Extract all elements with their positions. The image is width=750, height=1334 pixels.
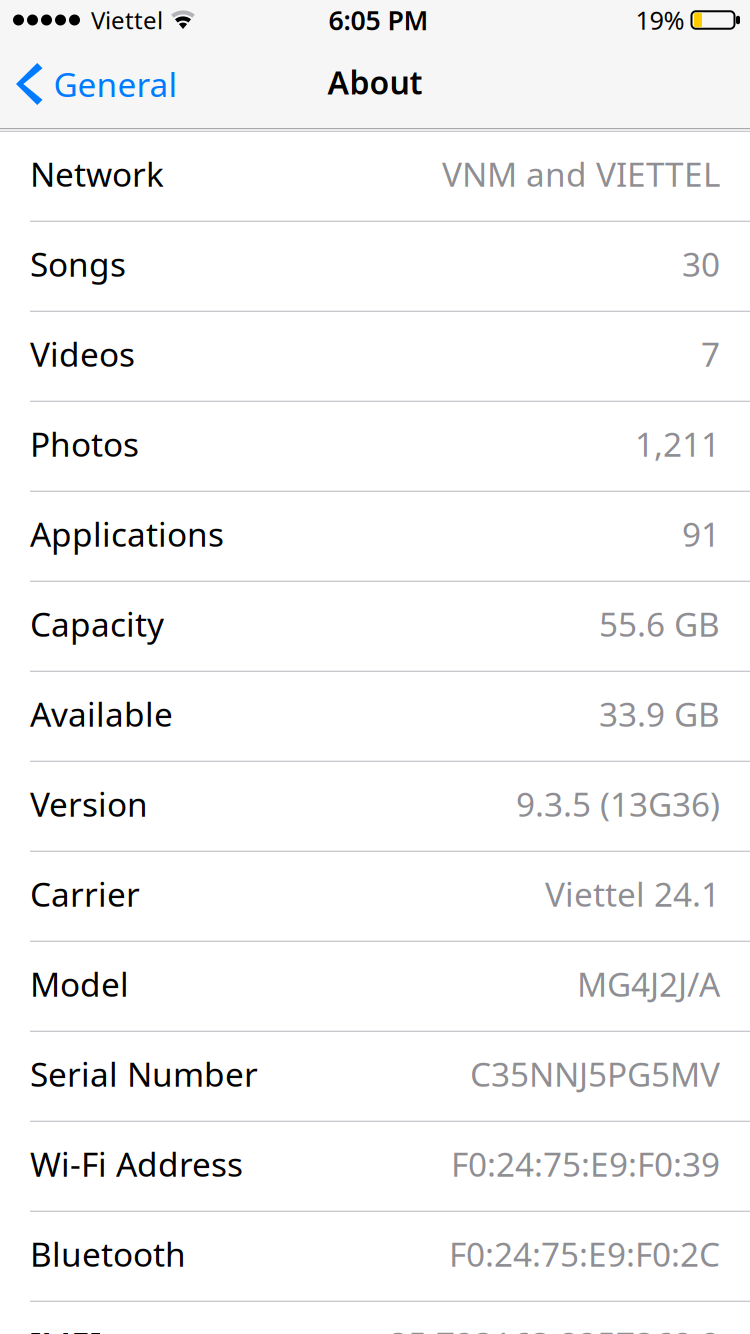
button[interactable]: IMEI [0, 1302, 750, 1334]
staticText: Carrier [30, 872, 140, 916]
button[interactable]: Applications [0, 492, 750, 582]
staticText: F0:24:75:E9:F0:2C [449, 1232, 720, 1276]
staticText: 33.9 GB [599, 692, 720, 736]
button[interactable]: Back to General [0, 40, 189, 128]
staticText: Songs [30, 242, 126, 286]
staticText: 6:05 PM [328, 2, 428, 38]
staticText: Serial Number [30, 1052, 258, 1096]
staticText: Model [30, 962, 129, 1006]
button[interactable]: Bluetooth [0, 1212, 750, 1302]
button[interactable]: Wi-Fi Address [0, 1122, 750, 1212]
button[interactable]: Carrier [0, 852, 750, 942]
button[interactable]: Model [0, 942, 750, 1032]
staticText: 1,211 [635, 422, 720, 466]
staticText: 7 [701, 332, 720, 376]
button[interactable]: Photos [0, 402, 750, 492]
staticText: IMEI [30, 1322, 101, 1334]
staticText: 55.6 GB [599, 602, 720, 646]
staticText: Bluetooth [30, 1232, 186, 1276]
staticText: 30 [682, 242, 720, 286]
staticText: Viettel [91, 4, 163, 36]
button[interactable]: Network [0, 132, 750, 222]
staticText: Available [30, 692, 173, 736]
staticText: Capacity [30, 602, 164, 646]
staticText: C35NNJ5PG5MV [470, 1052, 720, 1096]
button[interactable]: Version [0, 762, 750, 852]
staticText: Version [30, 782, 148, 826]
staticText: Network [30, 152, 164, 196]
staticText: Photos [30, 422, 139, 466]
staticText: General [53, 62, 177, 106]
staticText: 9.3.5 (13G36) [516, 782, 720, 826]
staticText: MG4J2J/A [577, 962, 720, 1006]
button[interactable]: Serial Number [0, 1032, 750, 1122]
button[interactable]: Available [0, 672, 750, 762]
staticText: Videos [30, 332, 135, 376]
staticText: Wi-Fi Address [30, 1142, 243, 1186]
staticText: F0:24:75:E9:F0:39 [451, 1142, 720, 1186]
button[interactable]: Capacity [0, 582, 750, 672]
staticText: Applications [30, 512, 224, 556]
staticText: Viettel 24.1 [545, 872, 720, 916]
staticText: 91 [682, 512, 720, 556]
staticText: 35.723163 8257368 2 [389, 1322, 720, 1334]
staticText: VNM and VIETTEL [442, 152, 720, 196]
button[interactable]: Videos [0, 312, 750, 402]
button[interactable]: Songs [0, 222, 750, 312]
staticText: 19% [635, 3, 684, 37]
staticText: About [327, 61, 422, 103]
